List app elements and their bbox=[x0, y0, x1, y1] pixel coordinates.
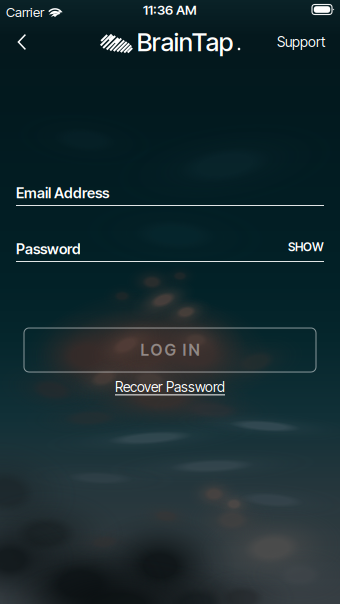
staticText: Support bbox=[277, 33, 325, 50]
button[interactable]: Back bbox=[0, 20, 44, 64]
staticText: SHOW bbox=[288, 240, 324, 254]
staticText: L O G I N bbox=[140, 340, 199, 360]
staticText: Password bbox=[16, 240, 81, 258]
button[interactable]: SHOW bbox=[284, 240, 324, 254]
button[interactable]: L O G I N bbox=[24, 328, 316, 372]
staticText: Recover Password bbox=[115, 378, 225, 395]
staticText: Carrier bbox=[6, 4, 44, 20]
staticText: BrainTap bbox=[137, 27, 234, 57]
button[interactable]: Support bbox=[268, 20, 334, 64]
staticText: 11:36 AM bbox=[143, 2, 197, 18]
staticText: Email Address bbox=[16, 184, 109, 202]
button[interactable]: Recover Password bbox=[0, 378, 340, 396]
